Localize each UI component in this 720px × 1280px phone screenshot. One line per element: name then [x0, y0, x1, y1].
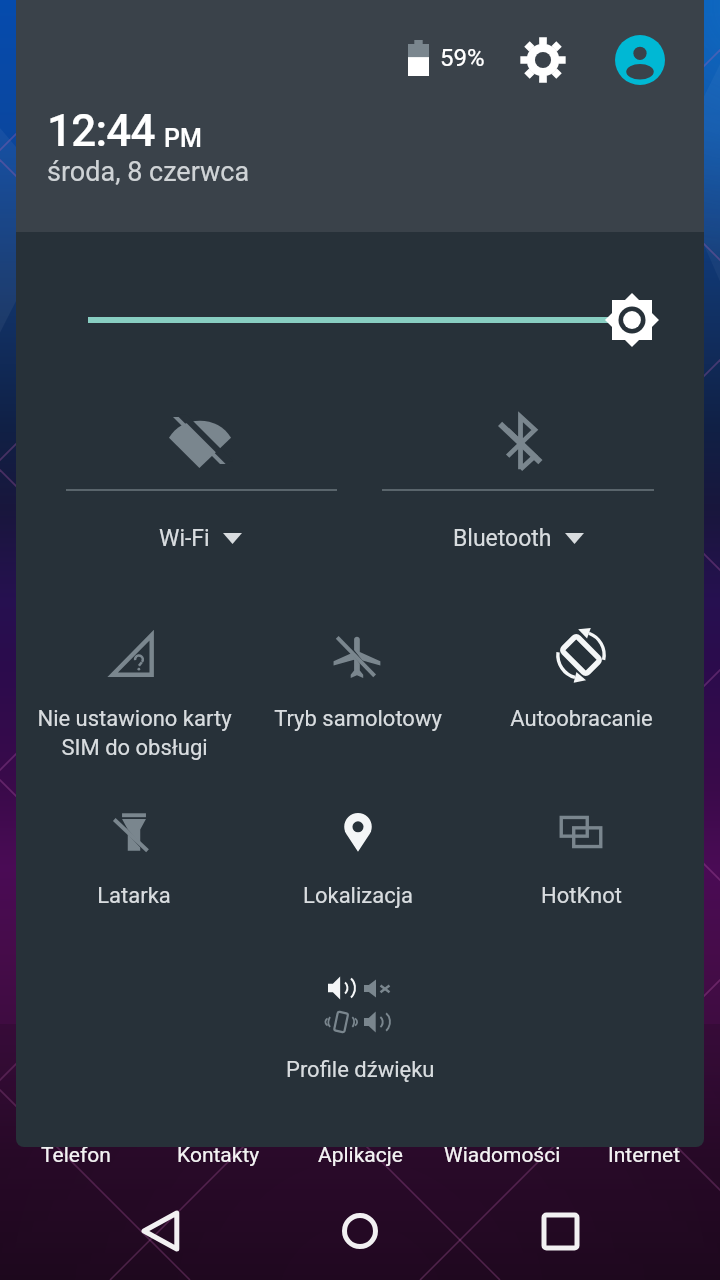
button[interactable]: Recents: [510, 1181, 610, 1280]
staticText: Telefon: [41, 1143, 111, 1168]
button[interactable]: Latarka: [19, 806, 249, 946]
staticText: 12:44: [47, 105, 155, 157]
button[interactable]: Profile dźwięku: [240, 960, 480, 1100]
button[interactable]: Aplikacje: [290, 1133, 430, 1177]
button[interactable]: Wiadomości: [432, 1133, 572, 1177]
button[interactable]: Lokalizacja: [243, 806, 473, 946]
staticText: Internet: [608, 1143, 681, 1168]
staticText: 59%: [440, 44, 485, 72]
staticText: Kontakty: [177, 1143, 260, 1168]
staticText: PM: [164, 124, 202, 153]
button[interactable]: Kontakty: [148, 1133, 288, 1177]
button[interactable]: Internet: [574, 1133, 714, 1177]
staticText: Wiadomości: [444, 1143, 561, 1168]
button[interactable]: Home: [310, 1181, 410, 1280]
button[interactable]: Wi-Fi: [90, 514, 310, 562]
button[interactable]: Settings: [517, 34, 569, 86]
staticText: HotKnot: [541, 883, 622, 909]
button[interactable]: User profile: [614, 34, 666, 86]
staticText: Bluetooth: [453, 525, 552, 552]
staticText: Autoobracanie: [510, 706, 653, 732]
button[interactable]: Tryb samolotowy: [243, 629, 473, 769]
staticText: Profile dźwięku: [286, 1057, 435, 1083]
staticText: Latarka: [97, 883, 171, 909]
button[interactable]: Brightness: [16, 270, 704, 370]
staticText: Wi-Fi: [159, 525, 210, 552]
staticText: Tryb samolotowy: [274, 706, 442, 732]
staticText: Nie ustawiono karty SIM do obsługi: [37, 706, 232, 760]
button[interactable]: Nie ustawiono karty SIM do obsługi: [19, 629, 249, 769]
button[interactable]: Telefon: [6, 1133, 146, 1177]
staticText: środa, 8 czerwca: [47, 156, 250, 188]
button[interactable]: Back: [110, 1181, 210, 1280]
button[interactable]: HotKnot: [466, 806, 696, 946]
button[interactable]: Bluetooth: [408, 514, 628, 562]
staticText: Aplikacje: [318, 1143, 403, 1168]
staticText: Lokalizacja: [303, 883, 413, 909]
button[interactable]: Autoobracanie: [466, 629, 696, 769]
